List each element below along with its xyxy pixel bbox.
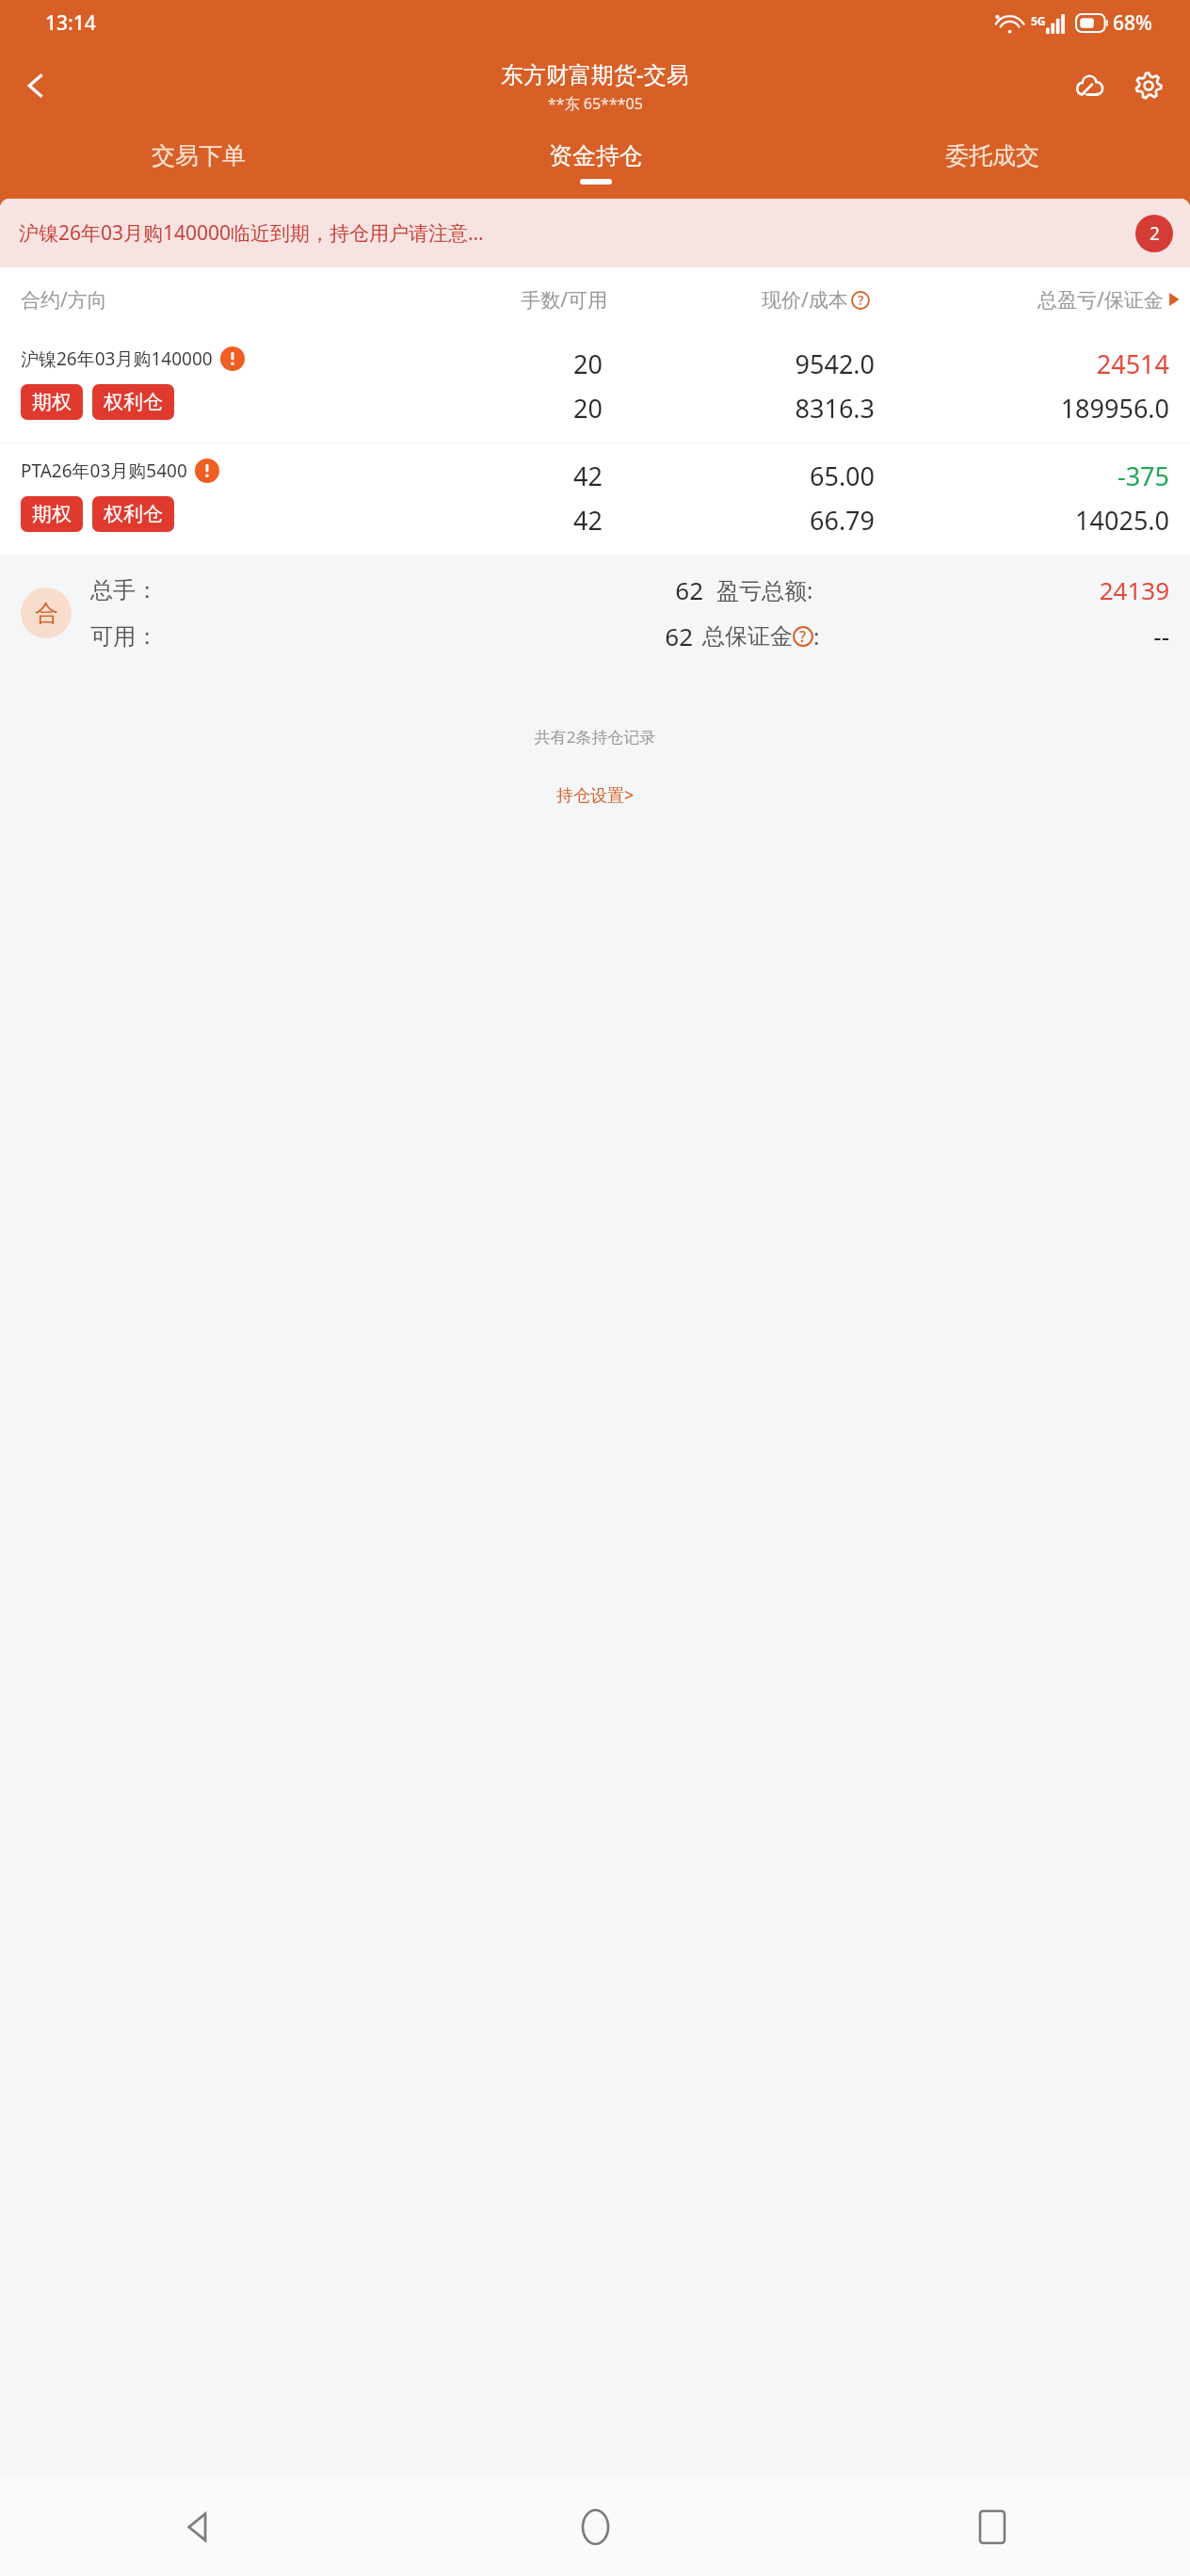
staticText: 62 (486, 573, 703, 606)
staticText: **东 65***05 (548, 93, 643, 114)
staticText: 2 (1150, 221, 1160, 246)
staticText: 盈亏总额: (716, 574, 813, 605)
staticText: 东方财富期货-交易 (501, 58, 689, 89)
button[interactable]: 沪镍26年03月购140000临近到期，持仓用户请注意… (0, 199, 1190, 267)
staticText: -375 (1117, 459, 1169, 493)
staticText: 持仓设置> (556, 783, 635, 807)
button[interactable]: Home (397, 2478, 794, 2576)
button[interactable]: 权利仓 (92, 384, 174, 420)
staticText: 9542.0 (795, 346, 875, 381)
staticText: 8316.3 (795, 391, 875, 426)
staticText: 权利仓 (104, 502, 163, 526)
staticText: 20 (573, 391, 603, 426)
button[interactable]: 期权 (21, 384, 83, 420)
button[interactable]: Recents (794, 2478, 1190, 2576)
staticText: 62 (479, 620, 693, 652)
staticText: 委托成交 (945, 141, 1039, 170)
staticText: 期权 (32, 390, 72, 414)
button[interactable]: Help (793, 626, 813, 647)
staticText: 沪镍26年03月购140000临近到期，持仓用户请注意… (19, 219, 484, 247)
staticText: 总盈亏/保证金 (1037, 286, 1164, 314)
staticText: 42 (573, 503, 603, 538)
staticText: 沪镍26年03月购140000 (21, 346, 213, 371)
staticText: ? (858, 291, 864, 310)
staticText: 42 (573, 459, 603, 493)
button[interactable]: Back (0, 2478, 397, 2576)
staticText: 65.00 (809, 459, 875, 493)
button[interactable]: Settings (1122, 59, 1175, 112)
staticText: 交易下单 (152, 141, 246, 170)
staticText: 资金持仓 (549, 141, 643, 170)
button[interactable]: Help (851, 291, 870, 310)
button[interactable]: Cloud (1064, 59, 1117, 112)
button[interactable]: 交易下单 (0, 126, 397, 200)
staticText: ? (799, 626, 807, 647)
button[interactable]: PTA26年03月购5400 (0, 443, 1190, 555)
button[interactable]: Back (6, 56, 66, 116)
staticText: 总保证金 (702, 622, 793, 651)
staticText: 24514 (1096, 346, 1169, 381)
staticText: 14025.0 (1075, 503, 1169, 538)
staticText: 现价/成本 (762, 286, 848, 314)
staticText: 合 (35, 599, 58, 628)
staticText: 20 (573, 346, 603, 381)
staticText: 共有2条持仓记录 (0, 726, 1190, 748)
staticText: : (813, 620, 820, 652)
staticText: PTA26年03月购5400 (21, 459, 187, 483)
button[interactable]: 资金持仓 (397, 126, 794, 200)
staticText: 可用： (90, 622, 479, 651)
button[interactable]: 委托成交 (794, 126, 1190, 200)
staticText: 66.79 (809, 503, 875, 538)
staticText: 68% (1113, 9, 1152, 37)
staticText: 期权 (32, 502, 72, 526)
staticText: 手数/可用 (378, 286, 607, 314)
staticText: -- (820, 620, 1169, 652)
button[interactable]: 持仓设置> (534, 778, 657, 813)
button[interactable]: 沪镍26年03月购140000 (0, 331, 1190, 443)
staticText: 24139 (813, 573, 1169, 606)
staticText: 189956.0 (1060, 391, 1169, 426)
staticText: 5G (1031, 13, 1046, 28)
staticText: 13:14 (45, 9, 96, 37)
staticText: 总手： (90, 576, 486, 604)
staticText: 权利仓 (104, 390, 163, 414)
button[interactable]: 权利仓 (92, 496, 174, 532)
staticText: 合约/方向 (21, 286, 378, 314)
button[interactable]: 期权 (21, 496, 83, 532)
